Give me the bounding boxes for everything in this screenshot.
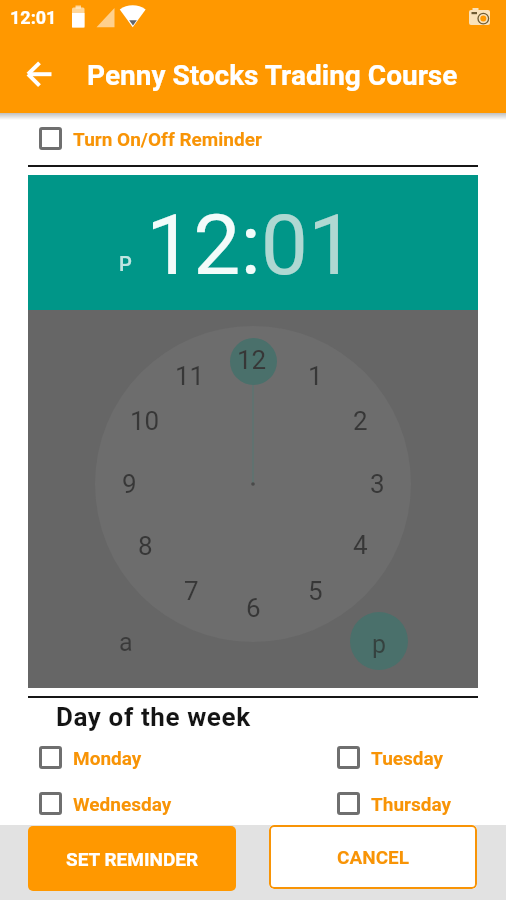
staticText: a [119, 628, 133, 657]
staticText: 4 [353, 530, 368, 560]
staticText: 5 [308, 576, 323, 606]
button[interactable]: SET REMINDER [28, 826, 236, 891]
button[interactable]: Tuesday [337, 745, 506, 771]
staticText: Turn On/Off Reminder [73, 128, 262, 150]
staticText: 12 [237, 345, 267, 375]
staticText: Wednesday [73, 793, 172, 815]
button[interactable]: Monday [39, 745, 219, 771]
button[interactable]: CANCEL [269, 825, 477, 889]
staticText: P [119, 252, 132, 275]
staticText: Day of the week [56, 702, 251, 732]
staticText: Penny Stocks Trading Course [87, 59, 458, 92]
staticText: 12:01 [146, 196, 356, 294]
staticText: 9 [122, 469, 137, 499]
staticText: Thursday [371, 793, 452, 815]
staticText: CANCEL [337, 846, 410, 868]
staticText: 7 [184, 576, 199, 606]
button[interactable] [18, 53, 62, 97]
staticText: 8 [138, 531, 153, 561]
staticText: p [372, 630, 387, 659]
staticText: 6 [246, 593, 261, 623]
button[interactable]: Wednesday [39, 791, 219, 817]
button[interactable]: Thursday [337, 791, 506, 817]
staticText: 1 [308, 361, 323, 391]
staticText: 10 [130, 406, 160, 436]
staticText: Tuesday [371, 747, 444, 769]
staticText: 3 [370, 469, 385, 499]
staticText: 11 [175, 361, 205, 391]
staticText: 2 [353, 406, 368, 436]
staticText: 12:01 [10, 7, 57, 28]
staticText: SET REMINDER [66, 848, 199, 870]
button[interactable]: Turn On/Off Reminder [39, 126, 299, 152]
staticText: Monday [73, 747, 142, 769]
